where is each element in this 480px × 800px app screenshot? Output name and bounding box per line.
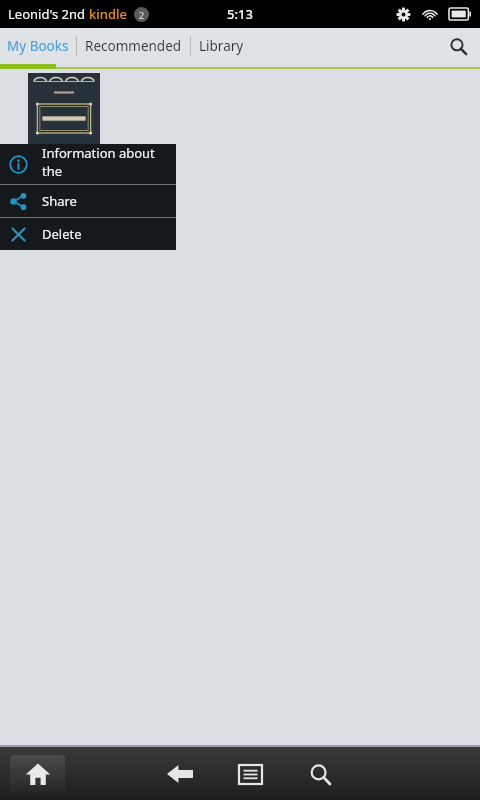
- button[interactable]: [28, 73, 100, 173]
- staticText: kindle: [89, 5, 127, 23]
- button[interactable]: Search: [436, 28, 480, 64]
- button[interactable]: Recommended: [77, 28, 190, 64]
- staticText: Мертвые души: [28, 189, 120, 206]
- staticText: 5:13: [227, 5, 253, 23]
- staticText: Share: [42, 192, 77, 210]
- staticText: My Books: [7, 37, 69, 55]
- button[interactable]: Library: [191, 28, 252, 64]
- staticText: Recommended: [85, 37, 182, 55]
- staticText: Library: [199, 37, 244, 55]
- staticText: Delete: [42, 225, 82, 243]
- staticText: Гоголь Н.В.: [28, 209, 85, 223]
- button[interactable]: Share: [0, 185, 176, 217]
- button[interactable]: Information about the book: [0, 144, 176, 184]
- button[interactable]: Menu: [226, 750, 274, 798]
- staticText: Information about the book: [42, 144, 176, 184]
- staticText: Leonid's 2nd: [8, 5, 89, 23]
- button[interactable]: Back: [156, 750, 204, 798]
- button[interactable]: Home: [10, 755, 65, 793]
- staticText: 2: [139, 9, 145, 21]
- button[interactable]: My Books: [0, 28, 76, 64]
- button[interactable]: Delete: [0, 218, 176, 250]
- button[interactable]: Search: [296, 750, 344, 798]
